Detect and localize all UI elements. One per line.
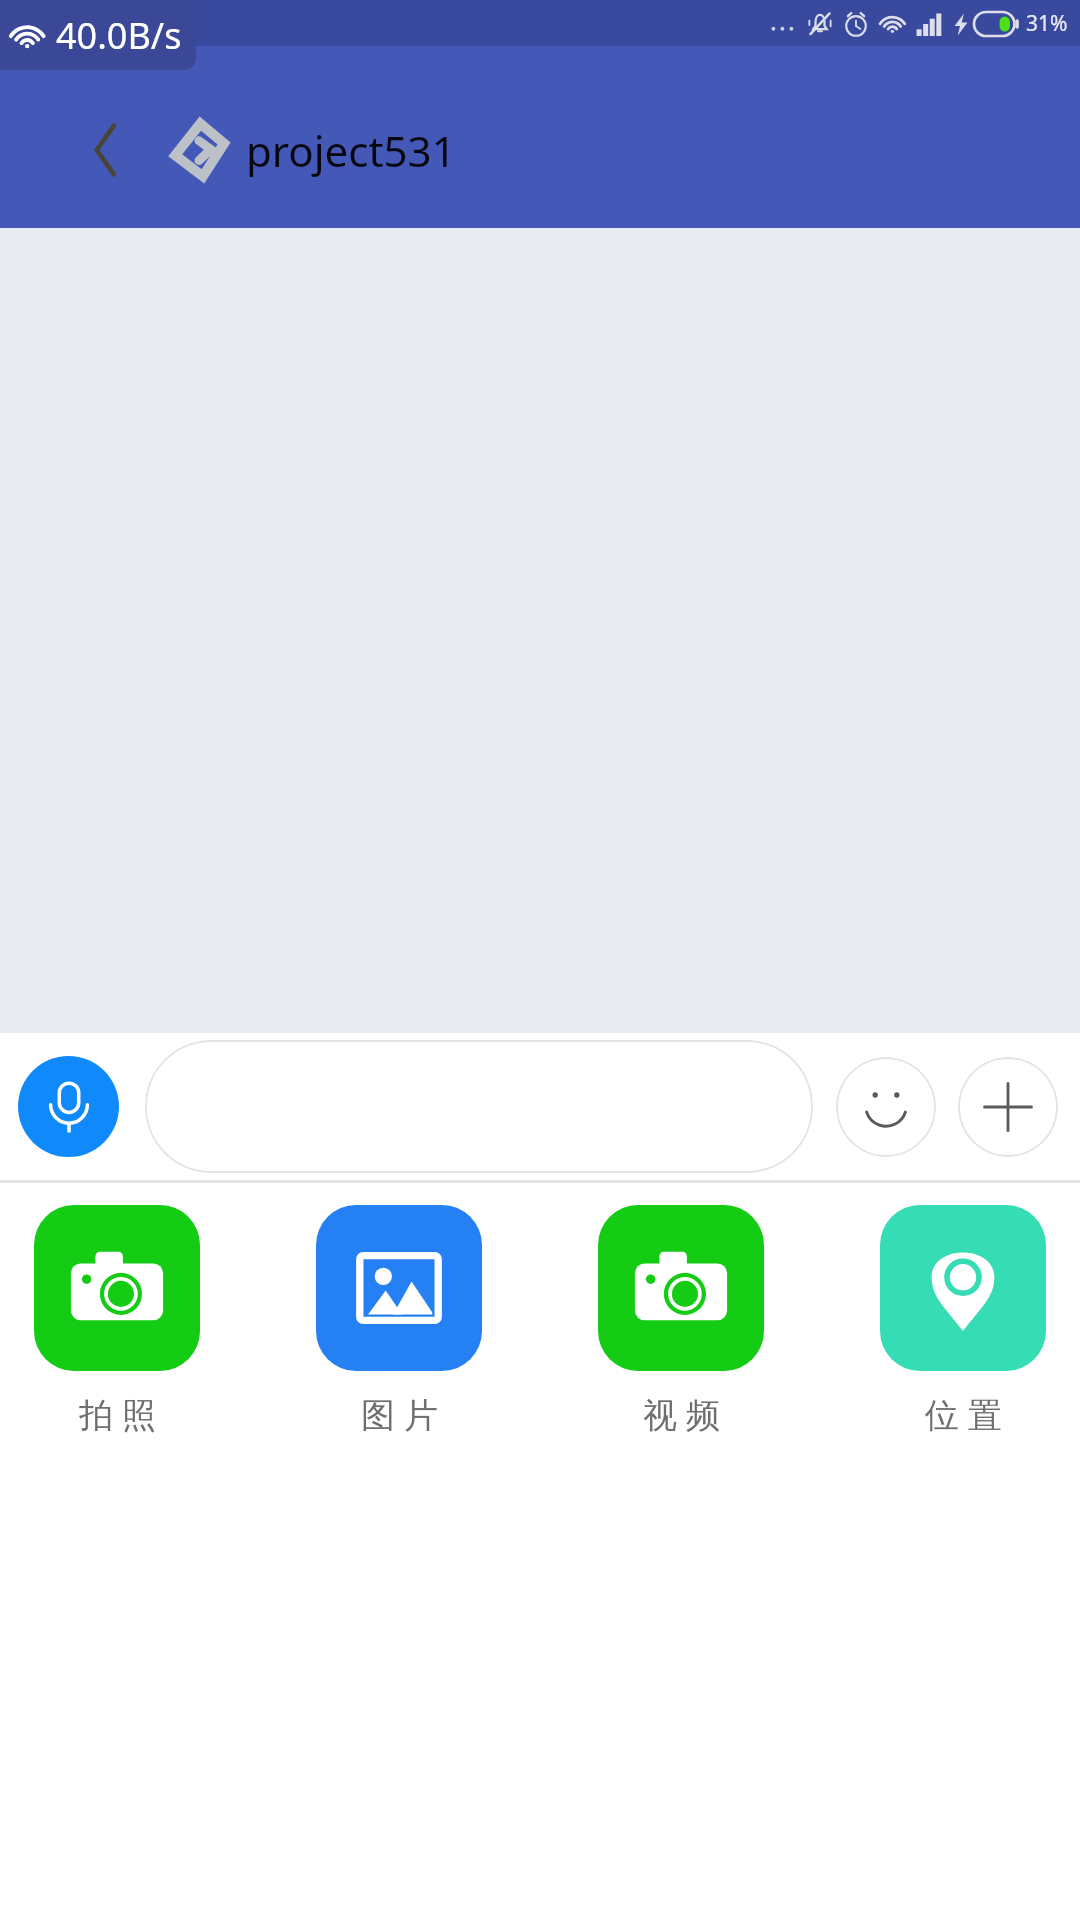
button[interactable]: Voice message bbox=[18, 1056, 119, 1157]
button[interactable]: Pictures bbox=[316, 1205, 482, 1437]
staticText: project531 bbox=[246, 122, 456, 179]
staticText: 40.0B/s bbox=[56, 11, 182, 60]
button[interactable]: Video bbox=[598, 1205, 764, 1437]
staticText: 晚上9:00 bbox=[14, 9, 98, 38]
button[interactable]: Back bbox=[74, 119, 136, 181]
other: Location bbox=[880, 1205, 1046, 1371]
staticText: 视 频 bbox=[643, 1391, 720, 1437]
button[interactable] bbox=[145, 1040, 813, 1173]
staticText: 图 片 bbox=[361, 1391, 438, 1437]
other: Video bbox=[598, 1205, 764, 1371]
button[interactable]: More options bbox=[958, 1057, 1058, 1157]
staticText: 位 置 bbox=[925, 1391, 1002, 1437]
other: Take photo bbox=[34, 1205, 200, 1371]
other: Pictures bbox=[316, 1205, 482, 1371]
button[interactable]: Take photo bbox=[34, 1205, 200, 1437]
button[interactable]: Location bbox=[880, 1205, 1046, 1437]
staticText: 31% bbox=[1026, 9, 1068, 38]
button[interactable]: Emoji bbox=[836, 1057, 936, 1157]
staticText: 拍 照 bbox=[79, 1391, 156, 1437]
